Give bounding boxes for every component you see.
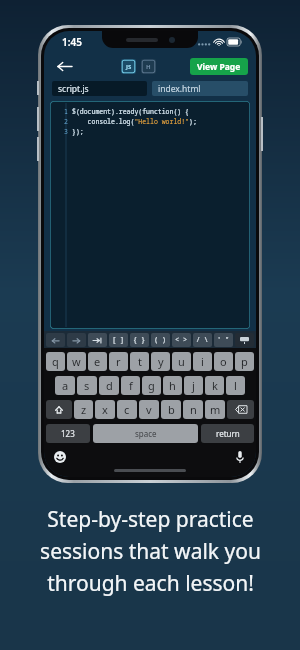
staticText: h [169,378,176,393]
staticText: t [138,354,142,369]
staticText: e [94,354,101,369]
button[interactable]: Keyboard shortcut [109,333,128,347]
staticText: [ [112,335,117,345]
button[interactable]: Keyboard shortcut [151,333,170,347]
staticText: n [190,402,197,417]
button[interactable]: q [46,352,65,371]
staticText: u [178,354,185,369]
staticText: } [141,335,146,345]
button[interactable]: script.js [52,81,147,96]
staticText: space [135,428,157,439]
button[interactable]: n [183,400,203,419]
staticText: }); [72,127,84,136]
staticText: w [72,354,81,369]
staticText: 1 [64,107,68,116]
staticText: console.log("Hello world!"); [72,117,197,126]
staticText: m [210,402,221,417]
button[interactable]: Keyboard shortcut [172,333,191,347]
button[interactable]: Back [52,54,76,78]
button[interactable]: f [121,376,140,395]
button[interactable]: m [205,400,225,419]
staticText: ' [217,335,222,345]
button[interactable]: JavaScript file [121,59,136,74]
staticText: x [102,402,108,417]
staticText: a [62,378,69,393]
staticText: $(document).ready(function() { [72,107,190,116]
button[interactable]: Keyboard shortcut [235,333,254,347]
staticText: p [241,354,248,369]
button[interactable]: index.html [152,81,248,96]
button[interactable]: j [184,376,203,395]
staticText: r [116,354,121,369]
staticText: View Page [197,61,241,73]
staticText: c [124,402,130,417]
button[interactable]: w [67,352,86,371]
button[interactable]: k [205,376,224,395]
staticText: JS [126,63,132,71]
staticText: script.js [58,83,89,95]
staticText: g [148,378,155,393]
button[interactable]: Keyboard shortcut [67,333,86,347]
staticText: o [220,354,227,369]
button[interactable]: p [235,352,254,371]
staticText: v [146,402,152,417]
button[interactable]: d [99,376,119,395]
button[interactable]: r [109,352,128,371]
staticText: b [168,402,175,417]
button[interactable]: HTML file [141,59,156,74]
button[interactable]: 123 [46,424,90,443]
staticText: < [175,335,180,345]
button[interactable]: Backspace [227,400,254,419]
staticText: d [106,378,113,393]
button[interactable]: l [226,376,245,395]
button[interactable]: Keyboard shortcut [46,333,65,347]
staticText: return [216,428,240,439]
staticText: sessions that walk you [40,537,261,566]
staticText: Step-by-step practice [47,505,254,534]
staticText: ] [120,335,125,345]
button[interactable]: return [201,424,254,443]
button[interactable]: u [172,352,191,371]
button[interactable]: Voice input [232,449,248,465]
button[interactable]: Keyboard shortcut [130,333,149,347]
staticText: 123 [61,428,75,439]
staticText: 1:45 [62,35,82,49]
button[interactable]: Keyboard shortcut [214,333,233,347]
button[interactable]: s [77,376,97,395]
button[interactable]: View Page [190,58,248,75]
staticText: z [81,402,87,417]
button[interactable]: g [142,376,161,395]
button[interactable]: Keyboard shortcut [88,333,107,347]
staticText: index.html [158,83,201,95]
staticText: ) [162,335,167,345]
button[interactable]: a [55,376,75,395]
button[interactable]: e [88,352,107,371]
button[interactable]: Shift [46,400,72,419]
button[interactable]: t [130,352,149,371]
button[interactable]: v [139,400,159,419]
staticText: \ [204,335,209,345]
button[interactable]: y [151,352,170,371]
staticText: y [158,354,164,369]
staticText: H [146,63,151,71]
staticText: / [196,335,201,345]
staticText: ( [154,335,159,345]
staticText: f [129,378,133,393]
button[interactable]: i [193,352,212,371]
staticText: s [84,378,90,393]
button[interactable]: z [74,400,93,419]
button[interactable]: o [214,352,233,371]
button[interactable]: b [161,400,181,419]
button[interactable]: c [117,400,137,419]
button[interactable]: h [163,376,182,395]
staticText: i [201,354,204,369]
staticText: k [212,378,218,393]
staticText: " [225,335,230,345]
button[interactable]: space [93,424,198,443]
button[interactable]: Keyboard shortcut [193,333,212,347]
button[interactable]: x [95,400,115,419]
staticText: l [234,378,237,393]
button[interactable]: Emoji [52,449,68,465]
staticText: j [192,378,195,393]
staticText: > [183,335,188,345]
